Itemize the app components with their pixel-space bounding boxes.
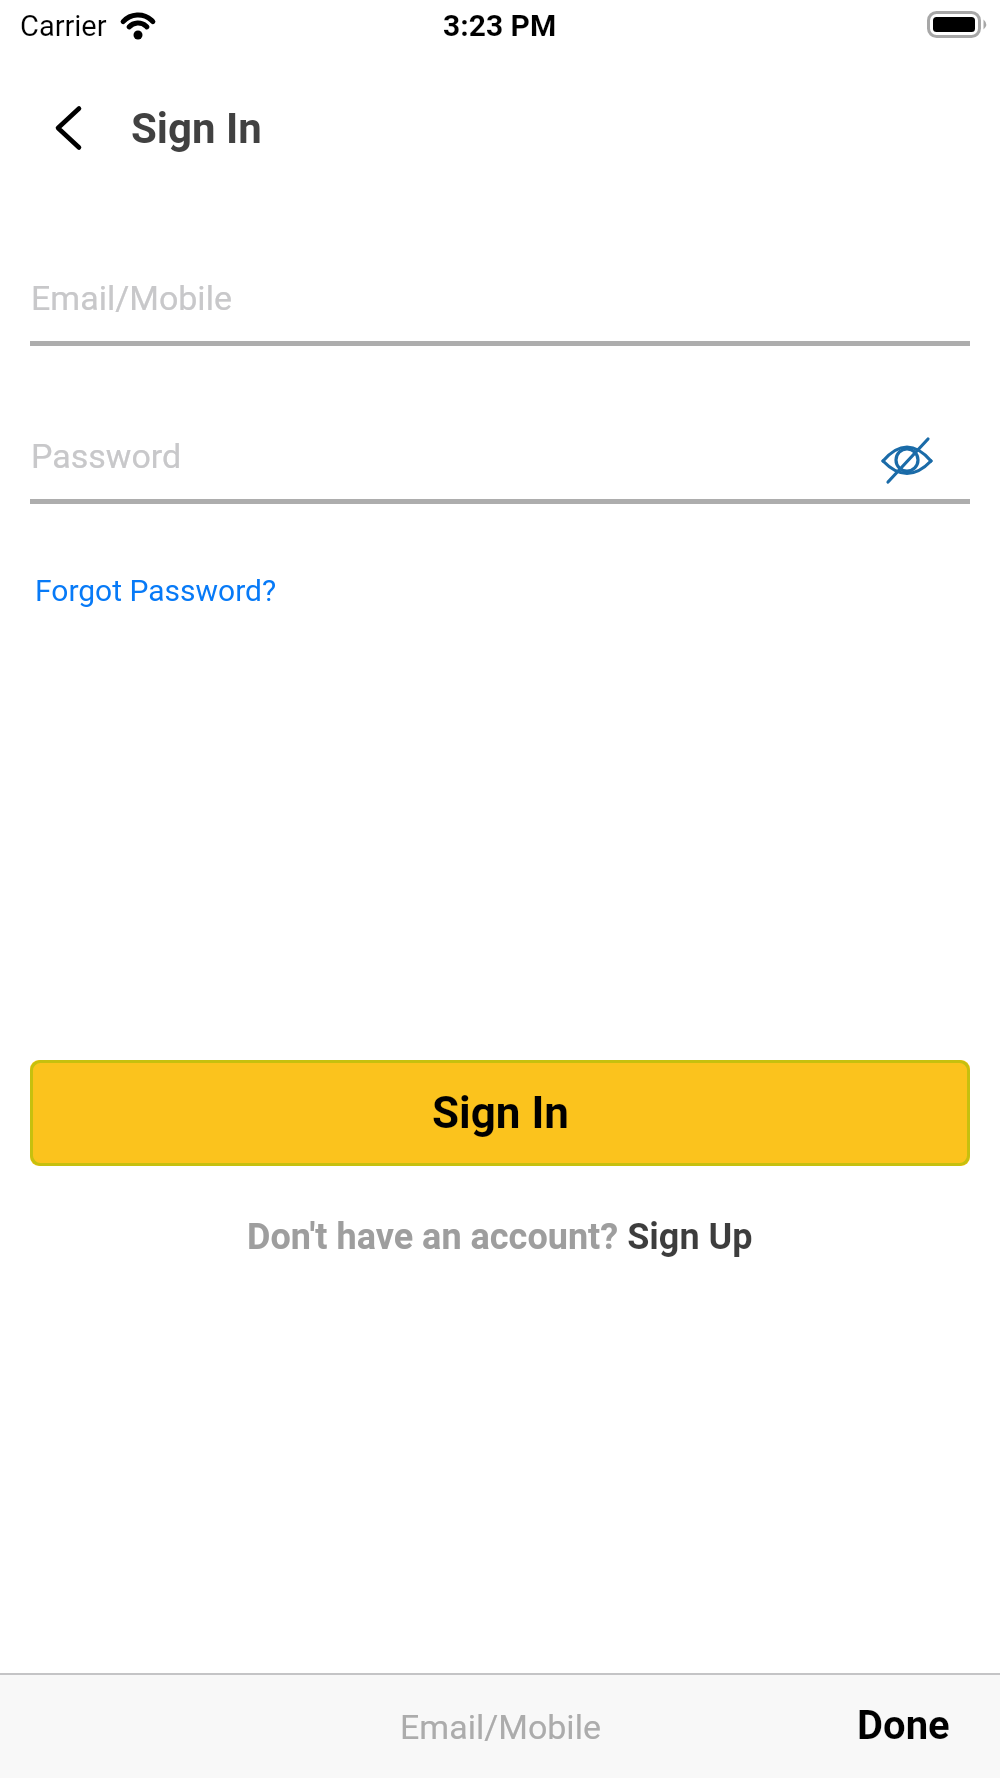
staticText: Don't have an account? Sign Up (247, 1216, 753, 1258)
staticText: Carrier (20, 9, 107, 43)
button[interactable] (868, 428, 946, 494)
staticText: Password (31, 436, 182, 476)
button[interactable]: Don't have an account? Sign Up (0, 1216, 1000, 1258)
button[interactable]: Sign In (30, 1060, 970, 1166)
staticText: Sign In (131, 104, 262, 153)
button[interactable]: Done (830, 1695, 960, 1755)
staticText: Forgot Password? (35, 573, 277, 608)
staticText: Email/Mobile (400, 1707, 601, 1747)
staticText: Email/Mobile (31, 278, 232, 318)
button[interactable]: Forgot Password? (35, 573, 277, 608)
staticText: Done (857, 1702, 950, 1749)
staticText: Sign In (432, 1087, 569, 1139)
staticText: 3:23 PM (443, 8, 557, 43)
button[interactable] (40, 93, 96, 163)
